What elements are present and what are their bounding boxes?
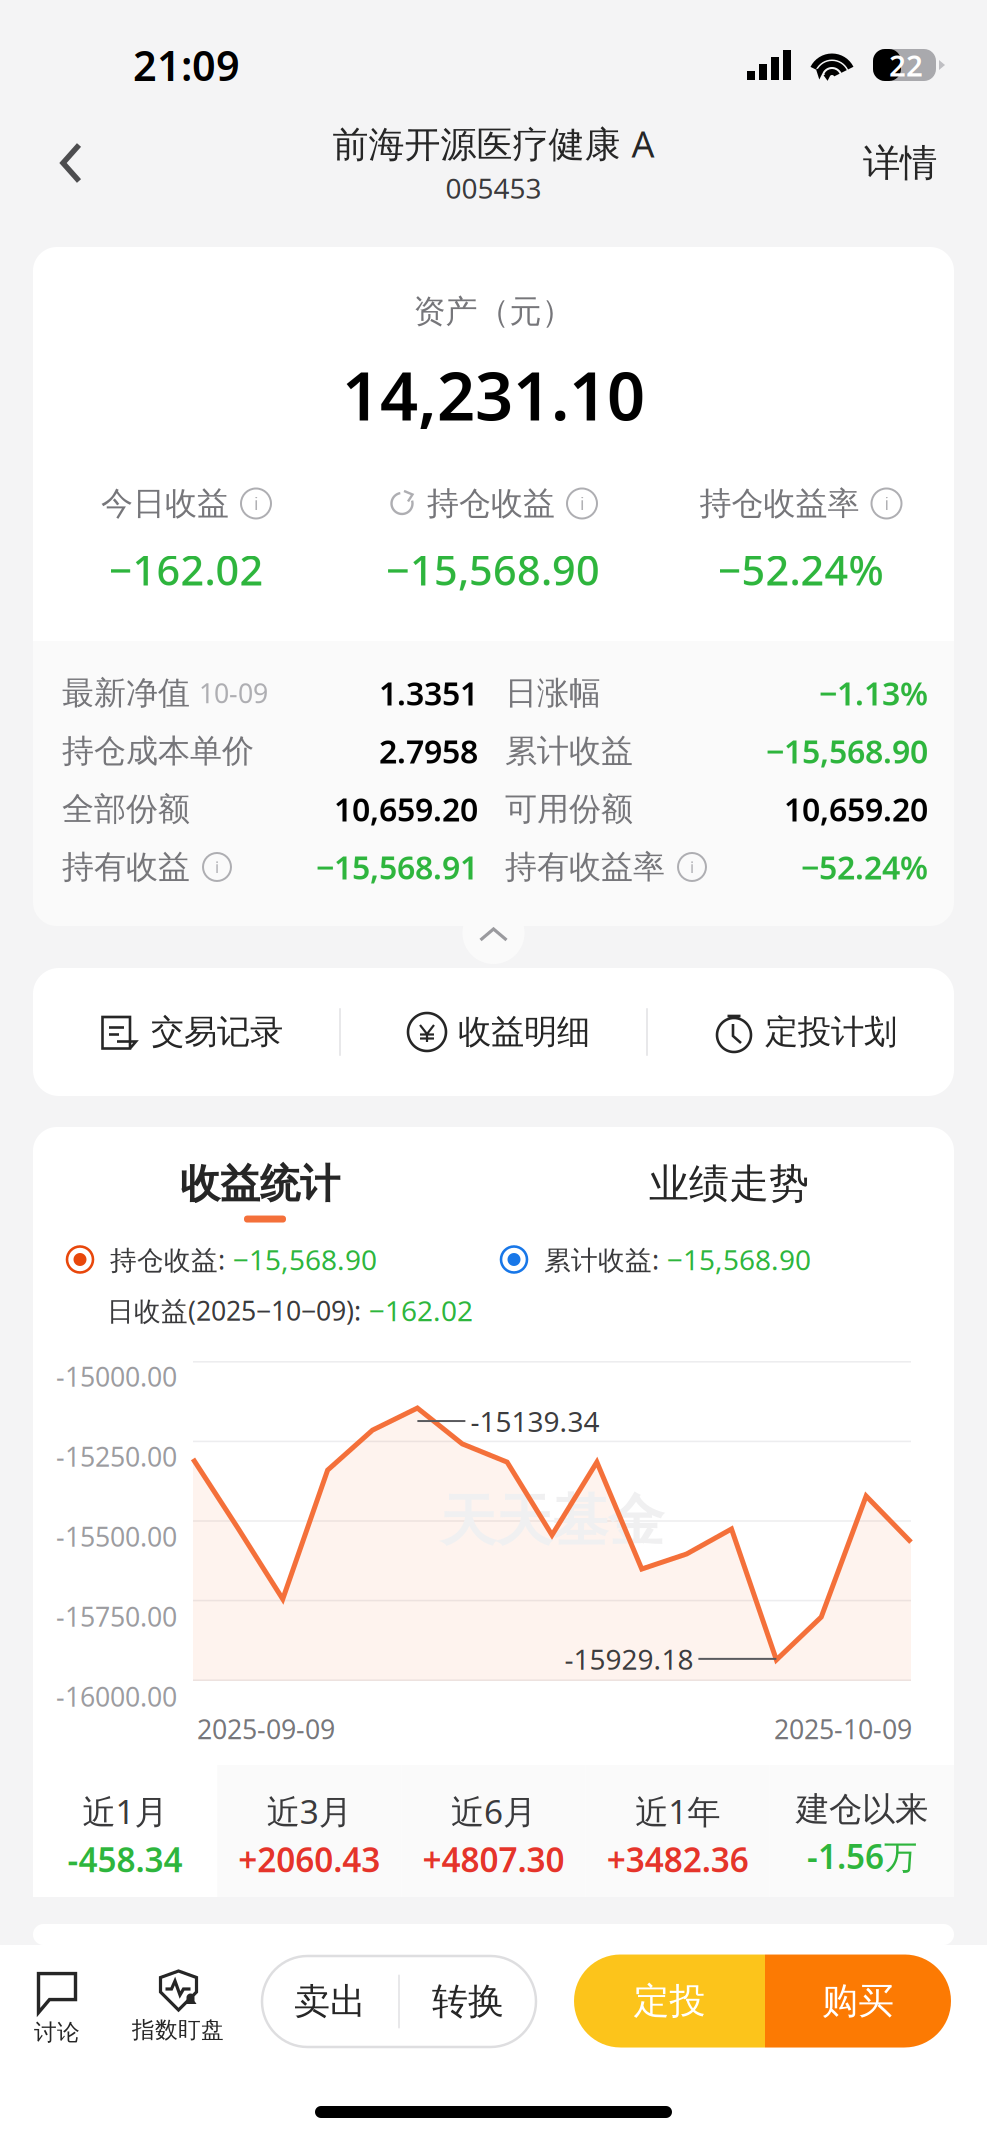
button[interactable]: 建仓以来 [770, 1765, 954, 1897]
button[interactable]: 近1月 [33, 1765, 217, 1897]
staticText: 日涨幅 [505, 673, 601, 713]
staticText: i [884, 492, 888, 515]
staticText: -15139.34 [470, 1402, 599, 1440]
staticText: i [690, 856, 694, 878]
staticText: -458.34 [68, 1837, 183, 1882]
staticText: 天天基金 [440, 1487, 664, 1555]
staticText: -16000.00 [56, 1679, 177, 1714]
button[interactable]: 近3月 [217, 1765, 401, 1897]
button[interactable]: 收益统计 [33, 1163, 487, 1219]
staticText: 资产（元） [413, 292, 573, 331]
staticText: −52.24% [801, 846, 928, 888]
staticText: 转换 [432, 1979, 504, 2024]
staticText: 可用份额 [505, 789, 633, 829]
staticText: 近1年 [635, 1789, 720, 1833]
staticText: -15750.00 [56, 1599, 177, 1634]
staticText: 交易记录 [151, 1011, 283, 1052]
staticText: 持仓收益: [110, 1242, 225, 1277]
staticText: 建仓以来 [796, 1789, 928, 1830]
staticText: 持仓成本单价 [62, 731, 254, 771]
staticText: 持有收益 [62, 847, 190, 887]
button[interactable]: 购买 [765, 1954, 951, 2047]
staticText: 指数盯盘 [132, 2016, 224, 2044]
staticText: 全部份额 [62, 789, 190, 829]
staticText: -15500.00 [56, 1519, 177, 1554]
staticText: 累计收益 [505, 731, 633, 771]
staticText: +4807.30 [422, 1837, 564, 1882]
staticText: -15000.00 [56, 1359, 177, 1394]
staticText: i [215, 856, 219, 878]
staticText: +2060.43 [238, 1837, 380, 1882]
staticText: i [254, 492, 258, 515]
staticText: 卖出 [294, 1979, 366, 2024]
staticText: 今日收益 [101, 484, 229, 523]
staticText: −52.24% [717, 542, 883, 597]
staticText: 收益统计 [180, 1159, 340, 1208]
staticText: 2025-10-09 [774, 1711, 912, 1747]
staticText: −162.02 [369, 1292, 473, 1329]
staticText: 持有收益率 [505, 847, 665, 887]
staticText: 讨论 [34, 2019, 80, 2046]
staticText: i [580, 492, 584, 515]
staticText: 近6月 [451, 1789, 536, 1833]
staticText: 2.7958 [379, 730, 478, 772]
button[interactable]: 定投计划 [647, 968, 954, 1096]
button[interactable]: 定投 [574, 1954, 765, 2047]
button[interactable]: 收益明细 [340, 968, 647, 1096]
button[interactable]: 返回 [0, 108, 180, 218]
staticText: −15,568.90 [766, 730, 928, 772]
staticText: −15,568.91 [316, 846, 478, 888]
button[interactable]: 交易记录 [33, 968, 340, 1096]
staticText: 购买 [822, 1979, 894, 2023]
staticText: −15,568.90 [386, 542, 600, 597]
button[interactable]: 近6月 [401, 1765, 586, 1897]
button[interactable]: 详情 [807, 108, 987, 218]
button[interactable]: 近1年 [586, 1765, 770, 1897]
staticText: 10-09 [199, 675, 268, 711]
button[interactable]: 指数盯盘 [131, 1956, 225, 2054]
staticText: 005453 [445, 169, 541, 206]
staticText: 日收益(2025−10−09): [107, 1293, 361, 1328]
button[interactable]: 讨论 [34, 1956, 80, 2054]
staticText: 2025-09-09 [197, 1711, 335, 1747]
staticText: 10,659.20 [334, 788, 478, 830]
staticText: 业绩走势 [649, 1159, 809, 1208]
staticText: 定投计划 [765, 1011, 897, 1052]
staticText: 收益明细 [458, 1011, 590, 1052]
staticText: 持仓收益 [427, 484, 555, 523]
staticText: -15250.00 [56, 1439, 177, 1474]
staticText: 21:09 [133, 38, 240, 92]
staticText: 近1月 [83, 1789, 168, 1833]
staticText: −15,568.90 [233, 1241, 377, 1278]
staticText: 最新净值 [62, 673, 190, 713]
staticText: 10,659.20 [784, 788, 928, 830]
button[interactable]: 收起 [462, 902, 524, 964]
staticText: 定投 [633, 1979, 705, 2023]
staticText: -1.56万 [807, 1834, 917, 1878]
button[interactable]: 卖出 [262, 1956, 398, 2047]
staticText: 近3月 [267, 1789, 352, 1833]
staticText: +3482.36 [607, 1837, 749, 1882]
staticText: −15,568.90 [667, 1241, 811, 1278]
staticText: -15929.18 [564, 1640, 693, 1677]
staticText: 1.3351 [379, 672, 478, 714]
staticText: 持仓收益率 [699, 484, 859, 523]
staticText: 22 [889, 45, 923, 84]
staticText: 详情 [863, 140, 937, 186]
staticText: −162.02 [108, 542, 263, 597]
button[interactable]: 转换 [400, 1956, 536, 2047]
staticText: 前海开源医疗健康 A [332, 119, 654, 167]
staticText: 累计收益: [544, 1242, 659, 1277]
staticText: 14,231.10 [342, 350, 645, 439]
button[interactable]: 业绩走势 [573, 1163, 885, 1219]
staticText: −1.13% [819, 672, 928, 714]
